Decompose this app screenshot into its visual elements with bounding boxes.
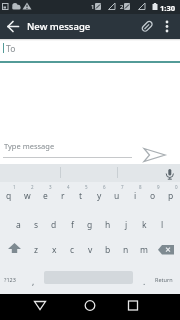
- staticText: b: [105, 244, 111, 256]
- button[interactable]: u: [108, 183, 126, 208]
- staticText: 2: [31, 184, 34, 190]
- button[interactable]: [142, 147, 168, 163]
- button[interactable]: e: [36, 183, 54, 208]
- button[interactable]: l: [153, 211, 171, 239]
- button[interactable]: y: [90, 183, 108, 208]
- button[interactable]: k: [135, 211, 153, 239]
- staticText: m: [140, 244, 148, 256]
- staticText: ,: [32, 276, 35, 288]
- staticText: k: [142, 219, 147, 231]
- staticText: Return: [155, 276, 173, 283]
- button[interactable]: z: [27, 237, 45, 263]
- button[interactable]: [33, 298, 47, 312]
- staticText: x: [52, 244, 57, 256]
- staticText: e: [43, 190, 48, 202]
- staticText: To: [6, 43, 16, 55]
- staticText: w: [24, 190, 31, 202]
- button[interactable]: c: [63, 237, 81, 263]
- button[interactable]: [83, 298, 97, 312]
- button[interactable]: p: [162, 183, 180, 208]
- button[interactable]: r: [54, 183, 72, 208]
- staticText: New message: [27, 20, 91, 33]
- button[interactable]: w: [18, 183, 36, 208]
- button[interactable]: i: [126, 183, 144, 208]
- button[interactable]: x: [45, 237, 63, 263]
- staticText: r: [61, 190, 65, 202]
- staticText: d: [51, 219, 57, 231]
- button[interactable]: [139, 19, 155, 34]
- staticText: v: [88, 244, 93, 256]
- staticText: n: [123, 244, 129, 256]
- button[interactable]: h: [99, 211, 117, 239]
- button[interactable]: m: [135, 237, 153, 263]
- staticText: a: [16, 219, 21, 231]
- button[interactable]: [6, 20, 20, 34]
- button[interactable]: [126, 298, 140, 312]
- staticText: p: [168, 190, 174, 202]
- staticText: l: [161, 219, 164, 231]
- button[interactable]: Return: [150, 266, 178, 292]
- staticText: 0: [175, 184, 178, 190]
- staticText: 1: [13, 184, 16, 190]
- button[interactable]: o: [144, 183, 162, 208]
- button[interactable]: To: [0, 39, 180, 63]
- staticText: .: [143, 276, 146, 288]
- button[interactable]: [163, 19, 171, 34]
- button[interactable]: g: [81, 211, 99, 239]
- staticText: i: [134, 190, 137, 202]
- staticText: ?123: [4, 276, 16, 283]
- staticText: 4: [67, 184, 70, 190]
- staticText: y: [97, 190, 102, 202]
- staticText: u: [114, 190, 120, 202]
- staticText: 5: [85, 184, 88, 190]
- button[interactable]: f: [63, 211, 81, 239]
- staticText: g: [87, 219, 93, 231]
- staticText: s: [34, 219, 39, 231]
- staticText: q: [6, 190, 12, 202]
- staticText: f: [71, 219, 74, 231]
- button[interactable]: [163, 168, 176, 181]
- staticText: 8: [139, 184, 142, 190]
- staticText: 3: [49, 184, 52, 190]
- staticText: z: [34, 244, 38, 256]
- staticText: h: [105, 219, 111, 231]
- staticText: 9: [157, 184, 160, 190]
- button[interactable]: Type message: [0, 138, 140, 164]
- button[interactable]: [7, 243, 22, 254]
- staticText: 2: [120, 3, 124, 11]
- button[interactable]: n: [117, 237, 135, 263]
- button[interactable]: d: [45, 211, 63, 239]
- staticText: t: [79, 190, 83, 202]
- staticText: 1: [91, 3, 95, 11]
- staticText: j: [125, 219, 128, 231]
- button[interactable]: a: [9, 211, 27, 239]
- staticText: Type message: [4, 141, 55, 151]
- button[interactable]: [158, 245, 175, 255]
- staticText: c: [70, 244, 75, 256]
- button[interactable]: b: [99, 237, 117, 263]
- staticText: 7: [121, 184, 124, 190]
- button[interactable]: ,: [24, 268, 42, 296]
- button[interactable]: q: [0, 183, 18, 208]
- button[interactable]: j: [117, 211, 135, 239]
- staticText: 1:30: [160, 3, 175, 13]
- button[interactable]: t: [72, 183, 90, 208]
- button[interactable]: s: [27, 211, 45, 239]
- staticText: o: [150, 190, 156, 202]
- button[interactable]: .: [135, 268, 153, 296]
- staticText: 6: [103, 184, 106, 190]
- button[interactable]: ?123: [0, 266, 20, 292]
- button[interactable]: v: [81, 237, 99, 263]
